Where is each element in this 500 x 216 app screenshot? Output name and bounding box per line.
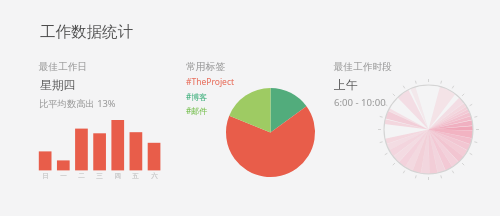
staticText: #博客 [186,91,208,102]
staticText: 最佳工作时段 [334,61,392,73]
staticText: #邮件 [186,105,208,116]
staticText: 二 [72,172,91,216]
staticText: 六 [145,172,164,216]
staticText: 最佳工作日 [39,61,87,73]
staticText: #TheProject [186,76,235,88]
staticText: 常用标签 [186,61,226,73]
staticText: 五 [126,172,145,216]
staticText: 四 [108,172,127,216]
staticText: 比平均数高出 13% [39,97,116,110]
staticText: 工作数据统计 [40,22,133,42]
staticText: 三 [90,172,109,216]
staticText: 6:00 - 10:00 [334,96,386,109]
staticText: 星期四 [40,78,76,93]
staticText: 日 [36,172,55,216]
staticText: 上午 [334,78,358,93]
